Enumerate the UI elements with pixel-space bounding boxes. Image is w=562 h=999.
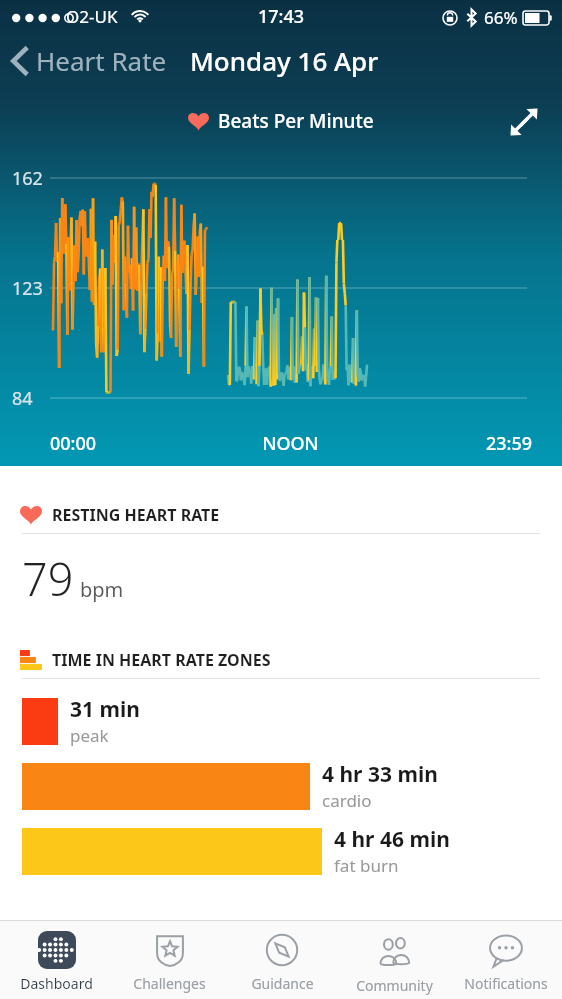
staticText: 66% — [484, 6, 518, 29]
staticText: bpm — [80, 576, 124, 603]
staticText: 4 hr 33 min — [322, 760, 438, 789]
button[interactable]: Heart Rate — [8, 39, 171, 82]
button[interactable]: 4 hr 46 min — [0, 823, 562, 879]
button[interactable]: Community — [338, 921, 450, 999]
staticText: O2-UK — [66, 5, 118, 28]
staticText: Community — [356, 976, 433, 995]
staticText: Monday 16 Apr — [190, 43, 379, 78]
staticText: 31 min — [70, 695, 140, 724]
other: Dashboard — [38, 931, 76, 969]
button[interactable]: Challenges — [113, 921, 226, 999]
staticText: 79 — [22, 548, 74, 609]
staticText: TIME IN HEART RATE ZONES — [52, 649, 271, 671]
button[interactable]: 31 min — [0, 693, 562, 749]
staticText: cardio — [322, 789, 372, 812]
staticText: 4 hr 46 min — [334, 825, 450, 854]
staticText: Challenges — [133, 974, 206, 993]
button[interactable]: Dashboard — [0, 921, 113, 999]
staticText: 00:00 — [50, 431, 210, 456]
staticText: Heart Rate — [36, 43, 167, 78]
button[interactable]: Guidance — [226, 921, 338, 999]
staticText: Notifications — [464, 974, 548, 993]
other: Community — [374, 931, 414, 971]
staticText: peak — [70, 724, 109, 747]
staticText: NOON — [210, 431, 371, 456]
staticText: Guidance — [251, 974, 314, 993]
button[interactable]: Expand chart — [502, 100, 546, 144]
staticText: RESTING HEART RATE — [52, 504, 220, 526]
staticText: fat burn — [334, 854, 399, 877]
staticText: Beats Per Minute — [218, 108, 374, 134]
other: Guidance — [263, 931, 301, 969]
button[interactable]: Notifications — [450, 921, 562, 999]
other: Challenges — [151, 931, 189, 969]
staticText: 23:59 — [371, 431, 532, 456]
staticText: 162 — [12, 166, 43, 191]
other: Notifications — [487, 931, 525, 969]
staticText: 84 — [12, 386, 33, 411]
button[interactable]: 4 hr 33 min — [0, 758, 562, 814]
staticText: Dashboard — [20, 974, 93, 993]
staticText: 123 — [12, 276, 43, 301]
staticText: 17:43 — [258, 4, 305, 29]
